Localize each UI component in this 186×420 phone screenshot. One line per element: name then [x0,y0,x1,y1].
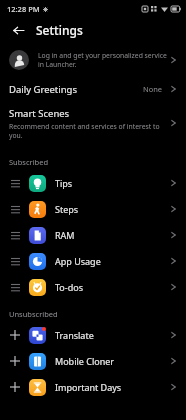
button[interactable]: Reorder Tips [0,170,186,196]
button[interactable]: Add Mobile Cloner [0,348,186,374]
staticText: 12:28 PM [7,4,40,14]
staticText: Smart Scenes [9,107,70,120]
button[interactable]: Daily Greetings [0,76,186,102]
staticText: Mobile Cloner [55,355,115,367]
staticText: To-dos [55,281,84,293]
staticText: Log in and get your personalized service… [38,51,167,69]
button[interactable]: Reorder RAM [0,222,186,248]
button[interactable]: Add Translate [0,322,186,348]
other: Reorder Tips [9,177,21,189]
other: Add Translate [9,329,21,341]
other: Reorder RAM [9,229,21,241]
other: Reorder Steps [9,203,21,215]
staticText: Steps [55,203,79,215]
staticText: Important Days [55,381,122,393]
button[interactable]: Add Important Days [0,374,186,400]
button[interactable]: Reorder App Usage [0,248,186,274]
staticText: Translate [55,329,94,341]
staticText: Daily Greetings [9,83,77,96]
staticText: App Usage [55,255,101,267]
button[interactable]: Reorder To-dos [0,274,186,300]
other: Reorder App Usage [9,255,21,267]
staticText: Recommend content and services of intere… [9,122,160,140]
staticText: None [143,84,163,94]
other: Add Mobile Cloner [9,355,21,367]
button[interactable]: Smart Scenes [0,102,186,144]
other: Add Important Days [9,381,21,393]
staticText: Settings [36,22,83,38]
other: Reorder To-dos [9,281,21,293]
staticText: Tips [55,177,73,189]
button[interactable]: Reorder Steps [0,196,186,222]
button[interactable]: Back [9,21,27,39]
button[interactable]: Log in and get your personalized service… [0,43,186,76]
staticText: Subscribed [9,157,49,167]
staticText: RAM [55,229,75,241]
staticText: Unsubscribed [9,309,58,319]
